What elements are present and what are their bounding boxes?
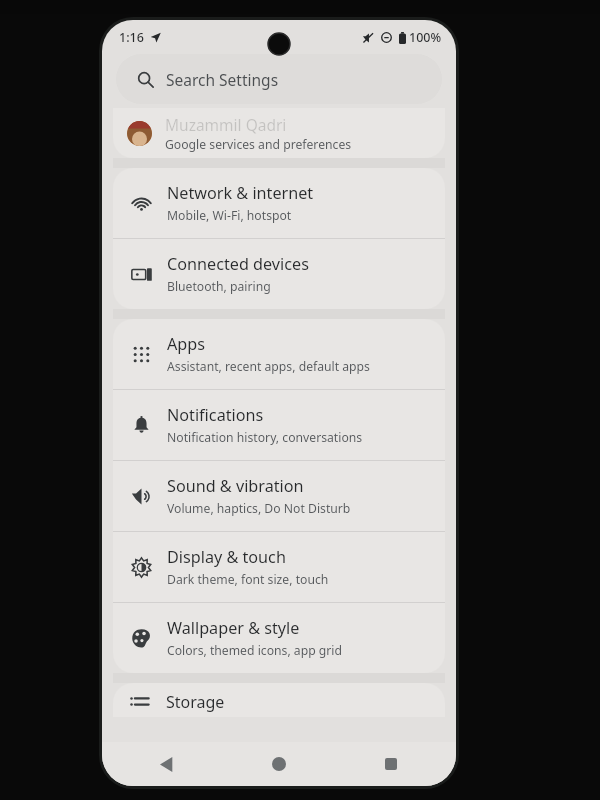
staticText: 100% bbox=[409, 29, 442, 46]
button[interactable]: Muzammil Qadri bbox=[113, 108, 445, 158]
staticText: Colors, themed icons, app grid bbox=[167, 642, 342, 659]
staticText: Storage bbox=[166, 691, 225, 713]
button[interactable]: Storage bbox=[113, 683, 445, 717]
staticText: Wallpaper & style bbox=[167, 617, 300, 639]
button[interactable]: Network & internet bbox=[113, 168, 445, 238]
button[interactable]: Wallpaper & style bbox=[113, 603, 445, 673]
button[interactable]: Sound & vibration bbox=[113, 461, 445, 531]
staticText: Google services and preferences bbox=[165, 136, 352, 153]
button[interactable]: Display & touch bbox=[113, 532, 445, 602]
staticText: Connected devices bbox=[167, 253, 309, 275]
staticText: Volume, haptics, Do Not Disturb bbox=[167, 500, 351, 517]
button[interactable]: Apps bbox=[113, 319, 445, 389]
staticText: Notifications bbox=[167, 404, 264, 426]
staticText: Display & touch bbox=[167, 546, 286, 568]
staticText: Sound & vibration bbox=[167, 475, 304, 497]
button[interactable]: Recent apps bbox=[370, 743, 412, 785]
staticText: Search Settings bbox=[166, 69, 279, 90]
staticText: Apps bbox=[167, 333, 206, 355]
staticText: Muzammil Qadri bbox=[165, 114, 287, 135]
button[interactable]: Back bbox=[146, 743, 188, 785]
staticText: Bluetooth, pairing bbox=[167, 278, 271, 295]
button[interactable]: Notifications bbox=[113, 390, 445, 460]
staticText: Assistant, recent apps, default apps bbox=[167, 358, 370, 375]
staticText: Dark theme, font size, touch bbox=[167, 571, 329, 588]
button[interactable]: Search Settings bbox=[116, 54, 442, 104]
button[interactable]: Connected devices bbox=[113, 239, 445, 309]
staticText: Mobile, Wi-Fi, hotspot bbox=[167, 207, 292, 224]
staticText: Network & internet bbox=[167, 182, 314, 204]
staticText: Notification history, conversations bbox=[167, 429, 363, 446]
staticText: 1:16 bbox=[119, 29, 144, 46]
button[interactable]: Home bbox=[258, 743, 300, 785]
